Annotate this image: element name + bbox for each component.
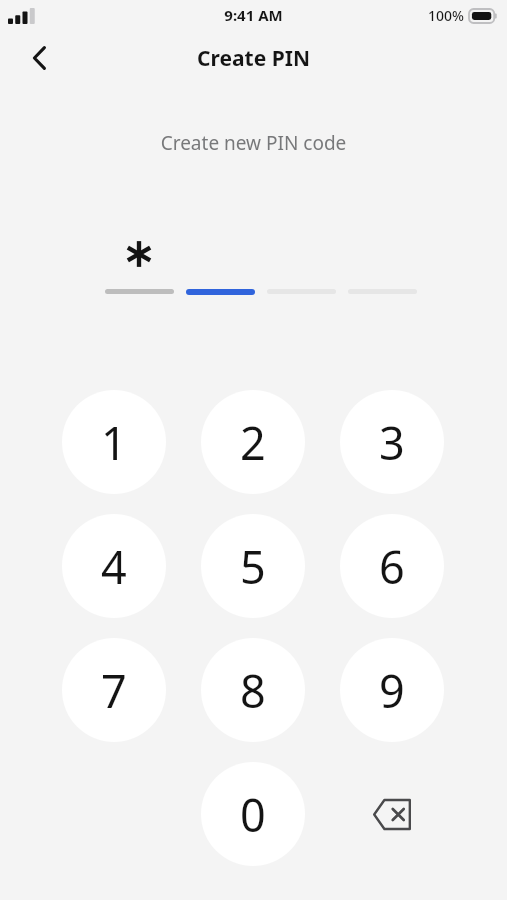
staticText: 6 (379, 536, 405, 597)
staticText: 0 (240, 784, 266, 845)
staticText: 2 (240, 412, 266, 473)
button[interactable]: 3 (340, 390, 444, 494)
button[interactable]: 4 (62, 514, 166, 618)
staticText: 9:41 AM (0, 5, 507, 25)
button[interactable]: 7 (62, 638, 166, 742)
button[interactable]: 5 (201, 514, 305, 618)
button[interactable]: 9 (340, 638, 444, 742)
staticText: 100% (428, 6, 464, 25)
staticText: Create PIN (0, 44, 507, 73)
staticText: Create new PIN code (0, 130, 507, 156)
staticText: 5 (240, 536, 266, 597)
staticText: 4 (101, 536, 127, 597)
staticText: 1 (101, 412, 127, 473)
staticText: 3 (379, 412, 405, 473)
staticText: 7 (101, 660, 127, 721)
staticText: 9 (379, 660, 405, 721)
staticText: 8 (240, 660, 266, 721)
button[interactable]: 2 (201, 390, 305, 494)
button[interactable]: 6 (340, 514, 444, 618)
button[interactable]: 1 (62, 390, 166, 494)
button[interactable]: Back (18, 36, 62, 80)
button[interactable]: 0 (201, 762, 305, 866)
button[interactable]: Backspace (340, 762, 444, 866)
button[interactable]: 8 (201, 638, 305, 742)
